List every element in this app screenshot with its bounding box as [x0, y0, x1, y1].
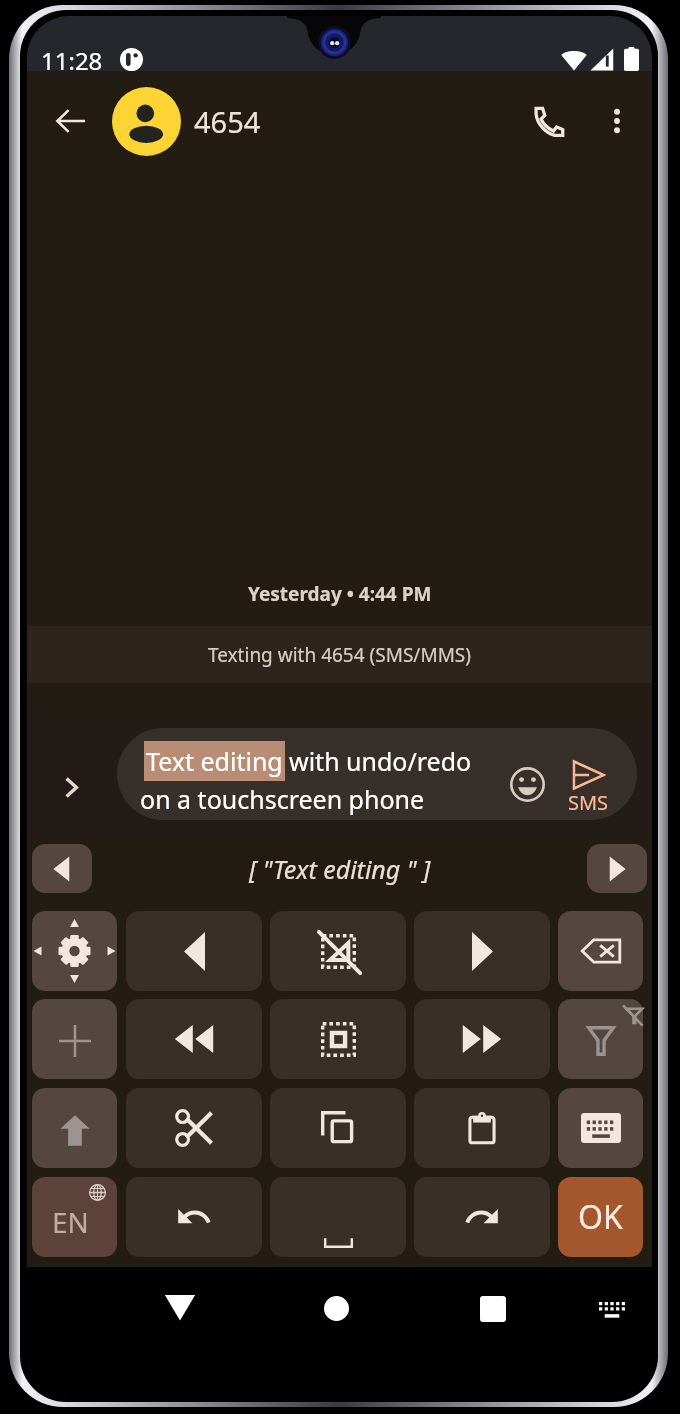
button[interactable]: Back — [152, 1279, 208, 1335]
staticText: EN — [52, 1203, 89, 1241]
button[interactable]: Show keyboard — [558, 1088, 643, 1168]
button[interactable]: Filter — [558, 999, 643, 1079]
button[interactable]: Emoji — [505, 762, 549, 806]
button[interactable]: Call — [522, 95, 574, 147]
staticText: Yesterday • 4:44 PM — [248, 581, 432, 607]
staticText: with undo/redo — [289, 744, 472, 778]
button[interactable]: Switch keyboard — [586, 1284, 638, 1336]
button[interactable]: Home — [308, 1280, 364, 1336]
button[interactable]: Move left — [126, 911, 262, 991]
button[interactable]: Copy — [270, 1088, 406, 1168]
staticText: SMS — [568, 789, 609, 816]
button[interactable]: Deselect — [270, 911, 406, 991]
staticText: [ "Text editing " ] — [249, 852, 431, 886]
button[interactable]: OK — [558, 1177, 643, 1257]
staticText: 4654 — [194, 102, 261, 141]
button[interactable]: Backspace — [558, 911, 643, 991]
button[interactable]: Text editing — [117, 728, 637, 820]
button[interactable]: Shift — [32, 1088, 117, 1168]
button[interactable]: Recent apps — [465, 1281, 521, 1337]
staticText: Texting with 4654 (SMS/MMS) — [208, 642, 471, 668]
button[interactable]: Paste — [414, 1088, 550, 1168]
button[interactable]: Add — [32, 999, 117, 1079]
button[interactable]: Switch language — [32, 1177, 117, 1257]
button[interactable]: Send SMS — [568, 760, 609, 817]
staticText: on a touchscreen phone — [140, 782, 425, 816]
button[interactable]: Back — [45, 95, 97, 147]
button[interactable]: Space — [270, 1177, 406, 1257]
button[interactable]: Fast forward — [414, 999, 550, 1079]
button[interactable]: Redo — [414, 1177, 550, 1257]
staticText: Text editing — [146, 744, 283, 778]
button[interactable]: Select all — [270, 999, 406, 1079]
button[interactable]: Settings — [32, 911, 117, 991]
button[interactable]: Contact avatar — [112, 87, 181, 156]
button[interactable]: Expand message — [49, 765, 93, 809]
button[interactable]: More options — [591, 95, 643, 147]
button[interactable]: Next suggestion — [587, 844, 647, 893]
button[interactable]: Previous suggestion — [32, 844, 92, 893]
button[interactable]: Rewind — [126, 999, 262, 1079]
button[interactable]: Move right — [414, 911, 550, 991]
button[interactable]: Undo — [126, 1177, 262, 1257]
staticText: OK — [578, 1195, 623, 1239]
staticText: 11:28 — [41, 44, 103, 77]
button[interactable]: Cut — [126, 1088, 262, 1168]
